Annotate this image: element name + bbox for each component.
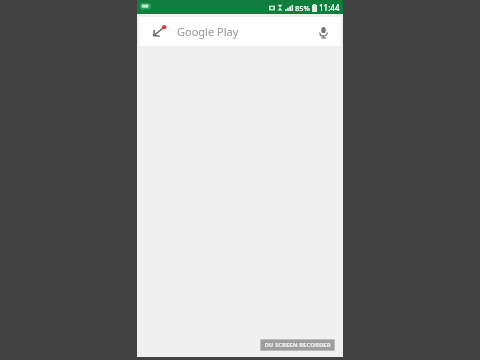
button[interactable]: Voice search [311,20,335,44]
staticText: 85% [295,3,310,13]
staticText: 11:44 [319,2,340,13]
button[interactable]: Back [149,22,169,42]
button[interactable]: Back [139,17,341,46]
staticText: Google Play [177,24,311,39]
staticText: DU SCREEN RECORDER [264,341,331,349]
